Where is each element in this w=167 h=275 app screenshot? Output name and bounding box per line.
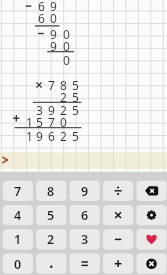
staticText: 9 [50, 26, 57, 42]
staticText: 9 [50, 38, 57, 54]
staticText: 2 [60, 102, 67, 118]
staticText: 5 [72, 128, 79, 144]
staticText: 5 [72, 102, 79, 118]
staticText: 3 [36, 102, 43, 118]
staticText: 6 [81, 207, 89, 224]
staticText: 8 [60, 77, 67, 93]
staticText: 4 [14, 207, 22, 224]
staticText: 5 [72, 89, 79, 105]
staticText: 2 [47, 231, 55, 248]
staticText: 2 [60, 128, 67, 144]
staticText: 9 [48, 102, 55, 118]
staticText: 0 [50, 10, 57, 26]
staticText: 1 [14, 231, 22, 248]
staticText: 6 [48, 128, 55, 144]
staticText: 9 [36, 128, 43, 144]
staticText: 5 [72, 77, 79, 93]
staticText: 7 [48, 114, 55, 130]
staticText: 2 [60, 89, 67, 105]
staticText: 0 [63, 52, 70, 68]
staticText: 9 [50, 0, 57, 14]
staticText: 0 [63, 26, 70, 42]
staticText: 1 [26, 114, 33, 130]
staticText: 6 [38, 0, 45, 14]
staticText: 7 [48, 77, 55, 93]
staticText: 5 [36, 114, 43, 130]
staticText: 8 [47, 183, 55, 200]
staticText: 1 [26, 128, 33, 144]
staticText: 7 [14, 183, 22, 200]
staticText: 0 [60, 114, 67, 130]
staticText: 9 [81, 183, 89, 200]
staticText: 0 [63, 38, 70, 54]
staticText: 0 [14, 256, 22, 273]
staticText: 3 [81, 231, 89, 248]
staticText: 5 [47, 207, 55, 224]
staticText: 6 [38, 10, 45, 26]
